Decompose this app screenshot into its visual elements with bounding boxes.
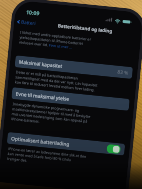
staticText: redusert over tid. Finn ut mer ... bbox=[19, 39, 73, 50]
staticText: 83 % bbox=[117, 69, 129, 77]
button[interactable]: Tilbake til Batteri bbox=[17, 18, 36, 26]
staticText: maskinvaresystemer hjelper til med å bes… bbox=[12, 106, 91, 119]
staticText: iPhone-en lærer av ladevanene dine slik … bbox=[8, 146, 87, 159]
button[interactable]: Optimalisert batterilading på bbox=[106, 144, 121, 154]
staticText: iPhone-batteriet. bbox=[11, 116, 40, 124]
staticText: Batteri bbox=[21, 19, 36, 26]
staticText: Dette er et mål på batterikapasiteten bbox=[16, 69, 79, 81]
staticText: kan føre til redusert levetid mellom hve… bbox=[15, 79, 96, 92]
staticText: I likhet med andre oppladbare batterier … bbox=[20, 29, 92, 42]
button[interactable]: Maksimal kapasitet bbox=[14, 55, 133, 79]
staticText: Evne til maksimal ytelse bbox=[15, 90, 70, 103]
staticText: Innebygde dynamiske programvare- og bbox=[12, 101, 80, 113]
staticText: ytelseskapasiteten til iPhone-batteriet bbox=[19, 34, 83, 46]
staticText: mot uventet nedstenging som kan oppstå p… bbox=[11, 111, 88, 124]
staticText: 10:09 bbox=[26, 8, 40, 16]
staticText: Maksimal kapasitet bbox=[19, 59, 63, 70]
staticText: kan vente med å lade forbi 80 % til du bbox=[7, 151, 72, 162]
staticText: trenger det. bbox=[7, 156, 28, 163]
staticText: Batteritilstand og lading bbox=[58, 22, 113, 34]
staticText: sammenlignet med da det var nytt. Lav ka… bbox=[15, 74, 98, 88]
button[interactable]: Evne til maksimal ytelse bbox=[11, 87, 130, 111]
staticText: Optimalisert batterilading bbox=[11, 135, 70, 148]
button[interactable]: Optimalisert batterilading bbox=[7, 132, 125, 156]
